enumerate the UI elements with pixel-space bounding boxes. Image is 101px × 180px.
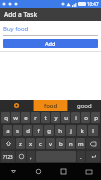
staticText: q: [4, 114, 8, 122]
staticText: i: [75, 114, 77, 122]
button[interactable]: b: [56, 138, 65, 149]
staticText: t: [44, 114, 47, 122]
staticText: good: [77, 102, 92, 110]
button[interactable]: u: [61, 112, 70, 123]
button[interactable]: good: [68, 100, 101, 111]
button[interactable]: w: [11, 112, 20, 123]
button[interactable]: v: [46, 138, 55, 149]
button[interactable]: e: [21, 112, 30, 123]
button[interactable]: i: [71, 112, 80, 123]
button[interactable]: [0, 100, 33, 111]
button[interactable]: Recents: [51, 163, 76, 180]
staticText: p: [94, 114, 98, 122]
button[interactable]: d: [23, 125, 32, 136]
staticText: z: [19, 140, 22, 148]
button[interactable]: y: [51, 112, 60, 123]
button[interactable]: Emoji: [16, 151, 26, 162]
staticText: a: [6, 127, 10, 135]
button[interactable]: food: [34, 100, 67, 111]
button[interactable]: z: [16, 138, 25, 149]
button[interactable]: Enter: [86, 151, 100, 162]
button[interactable]: h: [55, 125, 65, 136]
staticText: j: [70, 127, 72, 135]
staticText: c: [39, 140, 42, 148]
staticText: ,: [30, 153, 32, 161]
staticText: g: [47, 127, 51, 135]
staticText: o: [84, 114, 88, 122]
button[interactable]: ?123: [1, 151, 15, 162]
button[interactable]: n: [66, 138, 75, 149]
button[interactable]: Home: [26, 163, 51, 180]
button[interactable]: k: [77, 125, 87, 136]
staticText: ?123: [3, 154, 13, 160]
button[interactable]: o: [81, 112, 90, 123]
button[interactable]: j: [66, 125, 76, 136]
staticText: w: [13, 114, 18, 122]
button[interactable]: Hide keyboard: [0, 163, 26, 180]
button[interactable]: .: [77, 151, 85, 162]
button[interactable]: Add: [3, 39, 98, 48]
staticText: x: [29, 140, 33, 148]
button[interactable]: Shift: [1, 138, 15, 149]
staticText: Add a Task: [4, 10, 38, 19]
staticText: d: [26, 127, 30, 135]
staticText: .: [80, 153, 82, 161]
staticText: Add: [45, 40, 56, 47]
button[interactable]: g: [44, 125, 54, 136]
staticText: e: [24, 114, 28, 122]
staticText: f: [37, 127, 40, 135]
button[interactable]: l: [88, 125, 98, 136]
staticText: Buy food: [3, 25, 29, 33]
staticText: s: [16, 127, 19, 135]
button[interactable]: p: [91, 112, 100, 123]
button[interactable]: m: [76, 138, 85, 149]
staticText: y: [54, 114, 58, 122]
staticText: u: [64, 114, 68, 122]
button[interactable]: Switch keyboard: [76, 163, 101, 180]
button[interactable]: r: [31, 112, 40, 123]
staticText: food: [44, 102, 58, 110]
staticText: k: [80, 127, 84, 135]
button[interactable]: c: [36, 138, 45, 149]
staticText: 10:47: [87, 1, 99, 7]
button[interactable]: t: [41, 112, 50, 123]
button[interactable]: a: [3, 125, 12, 136]
button[interactable]: q: [1, 112, 10, 123]
staticText: n: [69, 140, 73, 148]
button[interactable]: s: [13, 125, 22, 136]
button[interactable]: x: [26, 138, 35, 149]
staticText: r: [34, 114, 37, 122]
staticText: v: [49, 140, 53, 148]
button[interactable]: Backspace: [86, 138, 100, 149]
staticText: m: [78, 140, 84, 148]
button[interactable]: ,: [27, 151, 35, 162]
button[interactable]: f: [33, 125, 43, 136]
button[interactable]: Buy food: [3, 25, 98, 36]
staticText: l: [92, 127, 94, 135]
staticText: h: [58, 127, 62, 135]
staticText: b: [59, 140, 63, 148]
